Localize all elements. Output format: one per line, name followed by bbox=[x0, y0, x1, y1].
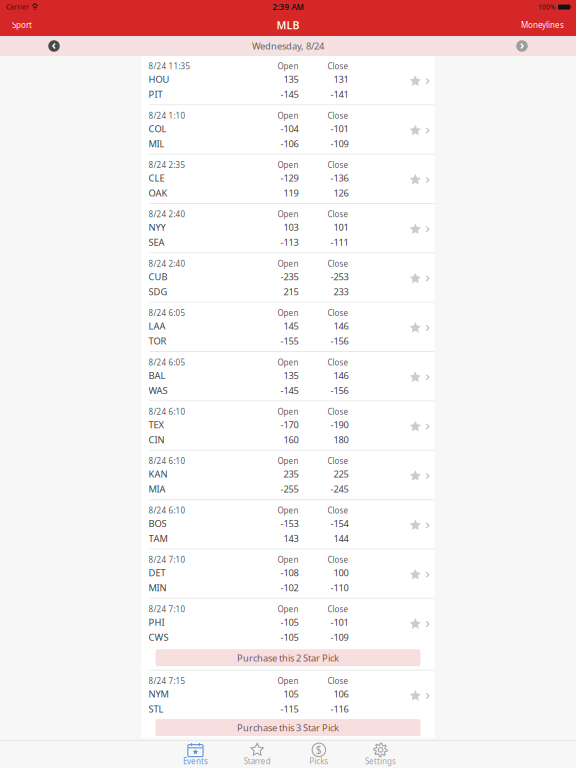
staticText: Close bbox=[327, 258, 348, 269]
staticText: 235 bbox=[283, 468, 298, 480]
button[interactable]: Purchase this 3 Star Pick bbox=[141, 719, 434, 736]
button[interactable] bbox=[141, 671, 434, 719]
staticText: Events bbox=[183, 756, 208, 766]
staticText: 131 bbox=[333, 73, 348, 85]
staticText: -155 bbox=[280, 335, 298, 347]
staticText: -116 bbox=[330, 703, 348, 715]
staticText: NYY bbox=[148, 221, 165, 233]
button[interactable] bbox=[141, 549, 434, 598]
staticText: -145 bbox=[280, 88, 298, 100]
staticText: Open bbox=[277, 406, 298, 417]
button[interactable]: Settings bbox=[350, 740, 411, 768]
staticText: Close bbox=[327, 604, 348, 614]
staticText: DET bbox=[148, 566, 165, 579]
staticText: Picks bbox=[309, 756, 328, 766]
staticText: 8/24 6:05 bbox=[148, 357, 185, 368]
staticText: Close bbox=[327, 110, 348, 121]
staticText: Close bbox=[327, 505, 348, 516]
staticText: SDG bbox=[148, 285, 167, 298]
button[interactable] bbox=[141, 155, 434, 203]
button[interactable] bbox=[141, 56, 434, 104]
staticText: WAS bbox=[148, 384, 167, 396]
button[interactable]: Events bbox=[165, 740, 226, 768]
staticText: SEA bbox=[148, 236, 164, 248]
staticText: 100 bbox=[333, 566, 348, 579]
staticText: -153 bbox=[280, 517, 298, 529]
button[interactable] bbox=[141, 352, 434, 400]
button[interactable]: Next day bbox=[512, 36, 532, 56]
staticText: -104 bbox=[280, 122, 298, 135]
staticText: 8/24 6:10 bbox=[148, 505, 185, 516]
staticText: -102 bbox=[280, 581, 298, 594]
button[interactable] bbox=[141, 401, 434, 450]
staticText: Wednesday, 8/24 bbox=[252, 40, 324, 52]
staticText: 8/24 7:10 bbox=[148, 554, 185, 565]
staticText: -245 bbox=[330, 483, 348, 495]
staticText: Open bbox=[277, 110, 298, 121]
staticText: Open bbox=[277, 505, 298, 516]
staticText: NYM bbox=[148, 688, 168, 700]
staticText: -101 bbox=[330, 616, 348, 628]
staticText: -156 bbox=[330, 384, 348, 396]
staticText: -113 bbox=[280, 236, 298, 248]
staticText: 126 bbox=[333, 187, 348, 199]
staticText: Carrier bbox=[6, 3, 29, 11]
staticText: 8/24 2:35 bbox=[148, 160, 185, 170]
staticText: -141 bbox=[330, 88, 348, 100]
staticText: 135 bbox=[283, 73, 298, 85]
staticText: Close bbox=[327, 554, 348, 565]
button[interactable]: Moneylines bbox=[521, 15, 564, 35]
staticText: 8/24 1:10 bbox=[148, 110, 185, 121]
staticText: 144 bbox=[333, 532, 348, 544]
staticText: 160 bbox=[283, 433, 298, 446]
staticText: -190 bbox=[330, 418, 348, 431]
staticText: MIN bbox=[148, 581, 166, 594]
staticText: Close bbox=[327, 308, 348, 318]
button[interactable]: Starred bbox=[226, 740, 288, 768]
staticText: -109 bbox=[330, 631, 348, 643]
staticText: 143 bbox=[283, 532, 298, 544]
staticText: CLE bbox=[148, 172, 164, 184]
button[interactable] bbox=[141, 253, 434, 302]
staticText: Purchase this 2 Star Pick bbox=[237, 652, 339, 664]
staticText: Close bbox=[327, 676, 348, 686]
staticText: 106 bbox=[333, 688, 348, 700]
staticText: Open bbox=[277, 258, 298, 269]
staticText: Open bbox=[277, 604, 298, 614]
staticText: Close bbox=[327, 209, 348, 219]
staticText: 8/24 2:40 bbox=[148, 209, 185, 219]
staticText: Close bbox=[327, 160, 348, 170]
button[interactable] bbox=[141, 303, 434, 351]
staticText: Settings bbox=[365, 756, 396, 766]
staticText: Starred bbox=[244, 756, 271, 766]
button[interactable] bbox=[141, 599, 434, 647]
staticText: TAM bbox=[148, 532, 167, 544]
button[interactable] bbox=[141, 105, 434, 154]
button[interactable] bbox=[141, 451, 434, 499]
staticText: Open bbox=[277, 160, 298, 170]
staticText: -145 bbox=[280, 384, 298, 396]
staticText: Open bbox=[277, 308, 298, 318]
staticText: Sport bbox=[12, 20, 32, 30]
button[interactable]: Previous day bbox=[44, 36, 64, 56]
staticText: Open bbox=[277, 61, 298, 71]
staticText: 8/24 11:35 bbox=[148, 61, 190, 71]
button[interactable] bbox=[141, 500, 434, 549]
staticText: OAK bbox=[148, 187, 167, 199]
button[interactable]: S bbox=[288, 740, 350, 768]
button[interactable] bbox=[141, 204, 434, 252]
staticText: TOR bbox=[148, 335, 166, 347]
staticText: 8/24 6:05 bbox=[148, 308, 185, 318]
staticText: 8/24 6:10 bbox=[148, 456, 185, 466]
staticText: -154 bbox=[330, 517, 348, 529]
staticText: 8/24 7:10 bbox=[148, 604, 185, 614]
staticText: HOU bbox=[148, 73, 169, 85]
button[interactable]: Sport bbox=[12, 15, 32, 35]
staticText: 8/24 2:40 bbox=[148, 258, 185, 269]
staticText: -170 bbox=[280, 418, 298, 431]
staticText: Open bbox=[277, 676, 298, 686]
staticText: 8/24 6:10 bbox=[148, 406, 185, 417]
staticText: 215 bbox=[283, 285, 298, 298]
button[interactable]: Purchase this 2 Star Pick bbox=[141, 649, 434, 666]
staticText: -105 bbox=[280, 631, 298, 643]
